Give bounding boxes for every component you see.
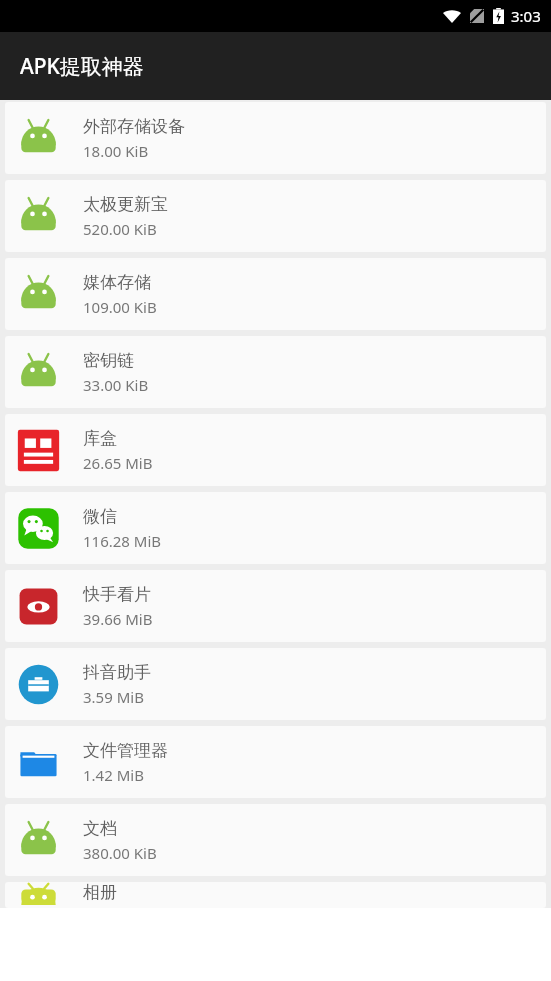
staticText: 1.42 MiB — [83, 765, 144, 785]
other: No SIM — [470, 9, 484, 23]
staticText: 116.28 MiB — [83, 531, 162, 551]
staticText: 文档 — [83, 818, 117, 839]
staticText: 380.00 KiB — [83, 843, 157, 863]
button[interactable]: 太极更新宝 — [5, 180, 546, 252]
button[interactable]: 快手看片 — [5, 570, 546, 642]
staticText: 相册 — [83, 882, 117, 903]
staticText: 库盒 — [83, 428, 117, 449]
staticText: 18.00 KiB — [83, 141, 149, 161]
button[interactable]: 微信 — [5, 492, 546, 564]
staticText: 520.00 KiB — [83, 219, 157, 239]
button[interactable]: 库盒 — [5, 414, 546, 486]
button[interactable]: 抖音助手 — [5, 648, 546, 720]
staticText: 快手看片 — [83, 584, 151, 605]
staticText: 抖音助手 — [83, 662, 151, 683]
button[interactable]: 文档 — [5, 804, 546, 876]
staticText: 39.66 MiB — [83, 609, 153, 629]
button[interactable]: 外部存储设备 — [5, 102, 546, 174]
button[interactable]: 相册 — [5, 882, 546, 908]
staticText: 文件管理器 — [83, 740, 168, 761]
staticText: 109.00 KiB — [83, 297, 157, 317]
other: Battery charging — [493, 8, 504, 24]
staticText: 33.00 KiB — [83, 375, 149, 395]
staticText: 媒体存储 — [83, 272, 151, 293]
button[interactable]: 媒体存储 — [5, 258, 546, 330]
staticText: 密钥链 — [83, 350, 134, 371]
staticText: 外部存储设备 — [83, 116, 185, 137]
other: Wi-Fi — [443, 9, 461, 23]
staticText: 3:03 — [511, 6, 541, 26]
staticText: 3.59 MiB — [83, 687, 144, 707]
staticText: 太极更新宝 — [83, 194, 168, 215]
staticText: 微信 — [83, 506, 117, 527]
button[interactable]: 密钥链 — [5, 336, 546, 408]
staticText: 26.65 MiB — [83, 453, 153, 473]
staticText: APK提取神器 — [20, 52, 144, 81]
button[interactable]: 文件管理器 — [5, 726, 546, 798]
